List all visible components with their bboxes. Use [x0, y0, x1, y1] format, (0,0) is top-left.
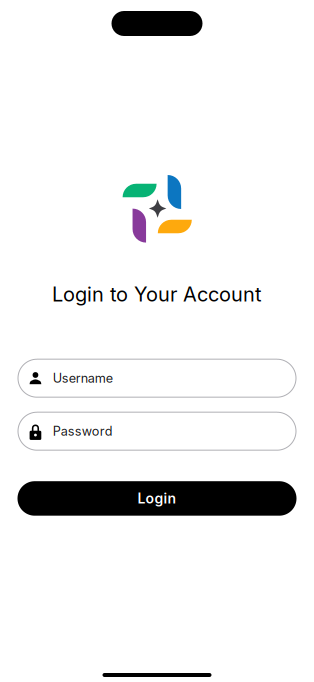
staticText: Login — [137, 490, 176, 507]
button[interactable]: Password — [18, 412, 296, 450]
staticText: Username — [53, 370, 113, 386]
staticText: Password — [53, 423, 113, 439]
button[interactable]: Login — [17, 481, 296, 516]
staticText: Login to Your Account — [52, 282, 262, 306]
button[interactable]: Username — [18, 359, 296, 397]
